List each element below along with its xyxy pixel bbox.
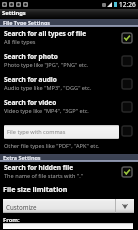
staticText: Photo type like "JPG", "PNG" etc. [4,61,89,69]
staticText: Search for all types of file [4,29,87,38]
staticText: Settings [2,9,26,17]
button[interactable]: Search for audio [0,73,138,96]
staticText: Customize [6,203,115,211]
staticText: Search for audio [4,75,57,84]
staticText: File Type Settings [3,19,51,25]
staticText: Video type like "MP4", "3GP" etc. [4,107,89,115]
button[interactable]: Checked [122,33,132,43]
button[interactable] [3,223,133,229]
button[interactable]: Unchecked [122,79,132,89]
button[interactable]: Unchecked [122,126,132,136]
button[interactable]: Customize [3,199,134,213]
staticText: Other file types like "PDF", "APK" etc. [4,142,100,150]
staticText: The name of file starts with "." [4,172,83,180]
staticText: Audio type like "MP3", "OGG" etc. [4,84,92,92]
staticText: All file types [4,38,36,46]
button[interactable]: Search for video [0,96,138,119]
button[interactable]: Search for all types of file [0,27,138,50]
button[interactable]: Extra Settings [0,154,138,162]
button[interactable]: Unchecked [122,102,132,112]
staticText: Extra Settings [3,154,41,160]
button[interactable]: Search for photo [0,50,138,73]
staticText: Search for hidden file [4,163,74,172]
button[interactable]: Search for hidden file [0,161,138,184]
staticText: Search for photo [4,52,58,61]
staticText: File size limitation [3,184,68,194]
button[interactable]: File type with commas [4,125,119,139]
staticText: 12:26 [119,0,136,9]
staticText: From: [3,216,20,224]
button[interactable]: Checked [122,167,132,177]
button[interactable]: File Type Settings [0,19,138,27]
button[interactable]: Unchecked [122,56,132,66]
staticText: Search for video [4,98,57,107]
staticText: File type with commas [7,128,66,136]
